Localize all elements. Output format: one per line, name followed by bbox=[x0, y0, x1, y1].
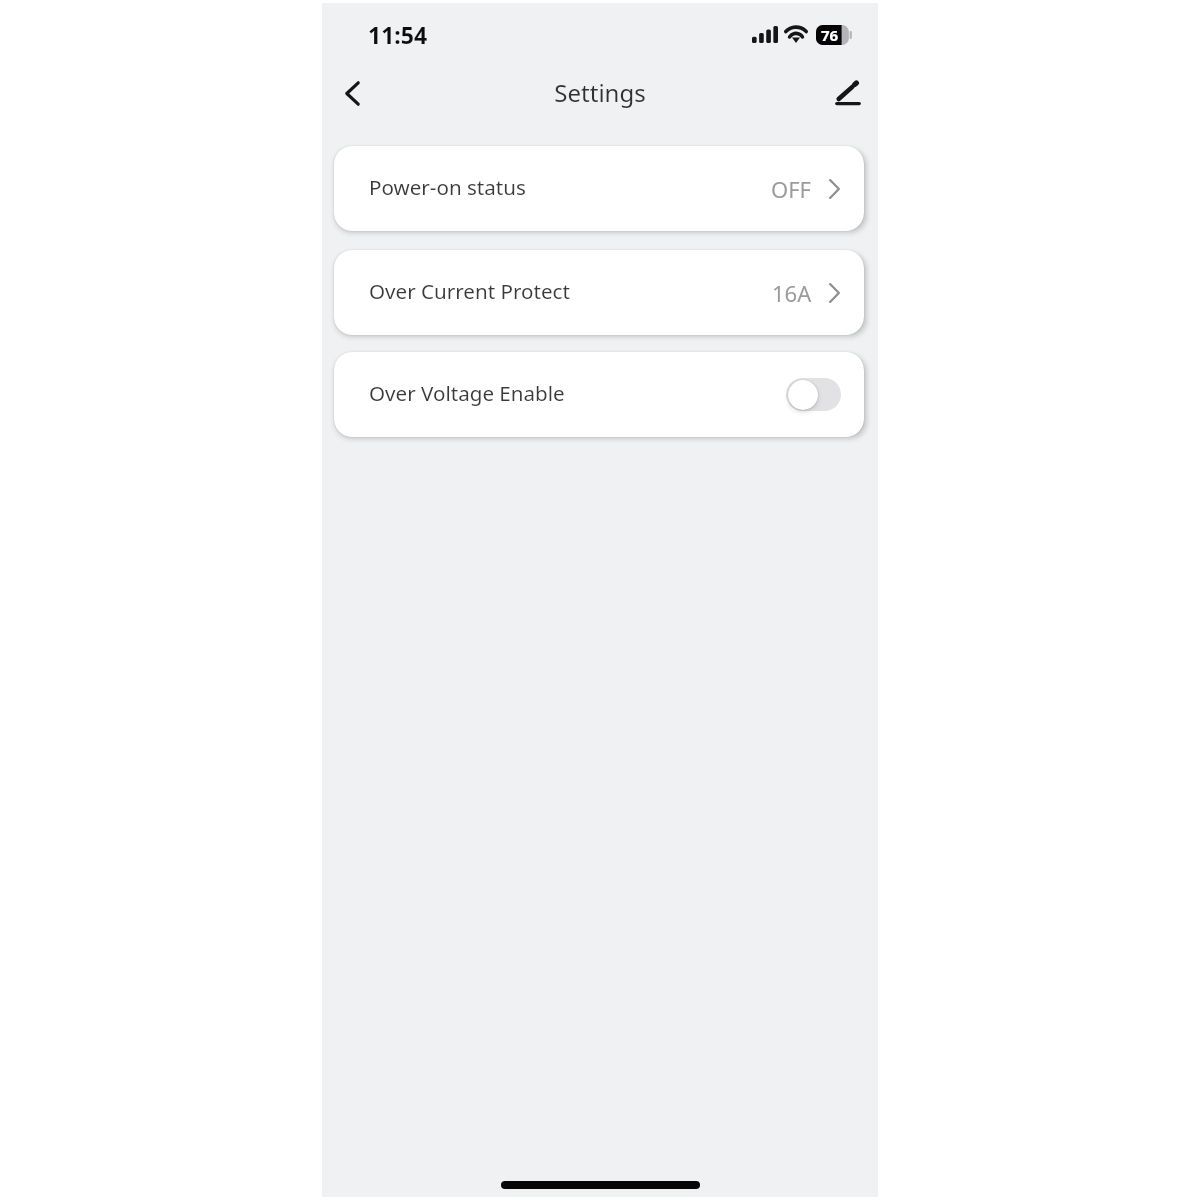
button[interactable]: Power-on status bbox=[334, 146, 864, 231]
staticText: Settings bbox=[554, 76, 646, 109]
staticText: Power-on status bbox=[369, 173, 526, 201]
staticText: 16A bbox=[772, 278, 812, 308]
staticText: 11:54 bbox=[368, 19, 428, 50]
button[interactable]: Over Current Protect bbox=[334, 250, 864, 335]
staticText: OFF bbox=[771, 174, 812, 204]
staticText: Over Current Protect bbox=[369, 277, 570, 305]
button[interactable]: Back bbox=[324, 65, 380, 121]
button[interactable]: Over Voltage Enable toggle bbox=[786, 378, 841, 411]
button[interactable]: Edit bbox=[820, 65, 876, 121]
staticText: Over Voltage Enable bbox=[369, 379, 565, 407]
staticText: 76 bbox=[821, 25, 839, 45]
button[interactable]: Over Voltage Enable bbox=[334, 352, 864, 437]
